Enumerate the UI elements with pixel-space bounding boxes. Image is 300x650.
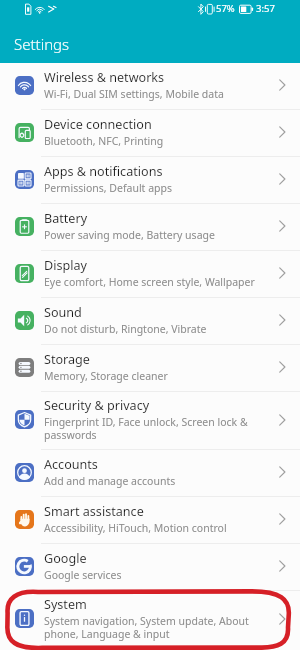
- staticText: Wi-Fi, Dual SIM settings, Mobile data: [44, 87, 224, 101]
- button[interactable]: Storage: [0, 345, 300, 391]
- button[interactable]: Apps & notifications: [0, 157, 300, 203]
- staticText: Wireless & networks: [44, 69, 165, 86]
- button[interactable]: Security & privacy: [0, 392, 300, 449]
- staticText: Settings: [14, 34, 70, 54]
- button[interactable]: Google: [0, 544, 300, 590]
- staticText: Accounts: [44, 456, 98, 473]
- staticText: Permissions, Default apps: [44, 181, 172, 195]
- staticText: Google services: [44, 568, 122, 582]
- button[interactable]: Accounts: [0, 450, 300, 496]
- staticText: Power saving mode, Battery usage: [44, 228, 215, 242]
- staticText: Google: [44, 550, 87, 567]
- button[interactable]: Smart assistance: [0, 497, 300, 543]
- staticText: 57%: [216, 2, 235, 15]
- staticText: Storage: [44, 351, 90, 368]
- staticText: Smart assistance: [44, 503, 144, 520]
- button[interactable]: System: [0, 591, 300, 648]
- staticText: Display: [44, 257, 87, 274]
- staticText: Do not disturb, Ringtone, Vibrate: [44, 322, 207, 336]
- button[interactable]: Battery: [0, 204, 300, 250]
- staticText: Sound: [44, 304, 82, 321]
- staticText: Fingerprint ID, Face unlock, Screen lock…: [44, 415, 248, 442]
- staticText: Memory, Storage cleaner: [44, 369, 168, 383]
- staticText: Battery: [44, 210, 88, 227]
- staticText: Bluetooth, NFC, Printing: [44, 134, 164, 148]
- staticText: System: [44, 596, 87, 613]
- button[interactable]: Display: [0, 251, 300, 297]
- staticText: System navigation, System update, About …: [44, 614, 249, 641]
- staticText: Apps & notifications: [44, 163, 163, 180]
- staticText: Security & privacy: [44, 397, 150, 414]
- staticText: Accessibility, HiTouch, Motion control: [44, 521, 227, 535]
- button[interactable]: Wireless & networks: [0, 63, 300, 109]
- staticText: Device connection: [44, 116, 152, 133]
- staticText: Add and manage accounts: [44, 474, 176, 488]
- staticText: 3:57: [256, 2, 275, 15]
- button[interactable]: Sound: [0, 298, 300, 344]
- button[interactable]: Device connection: [0, 110, 300, 156]
- staticText: Eye comfort, Home screen style, Wallpape…: [44, 275, 255, 289]
